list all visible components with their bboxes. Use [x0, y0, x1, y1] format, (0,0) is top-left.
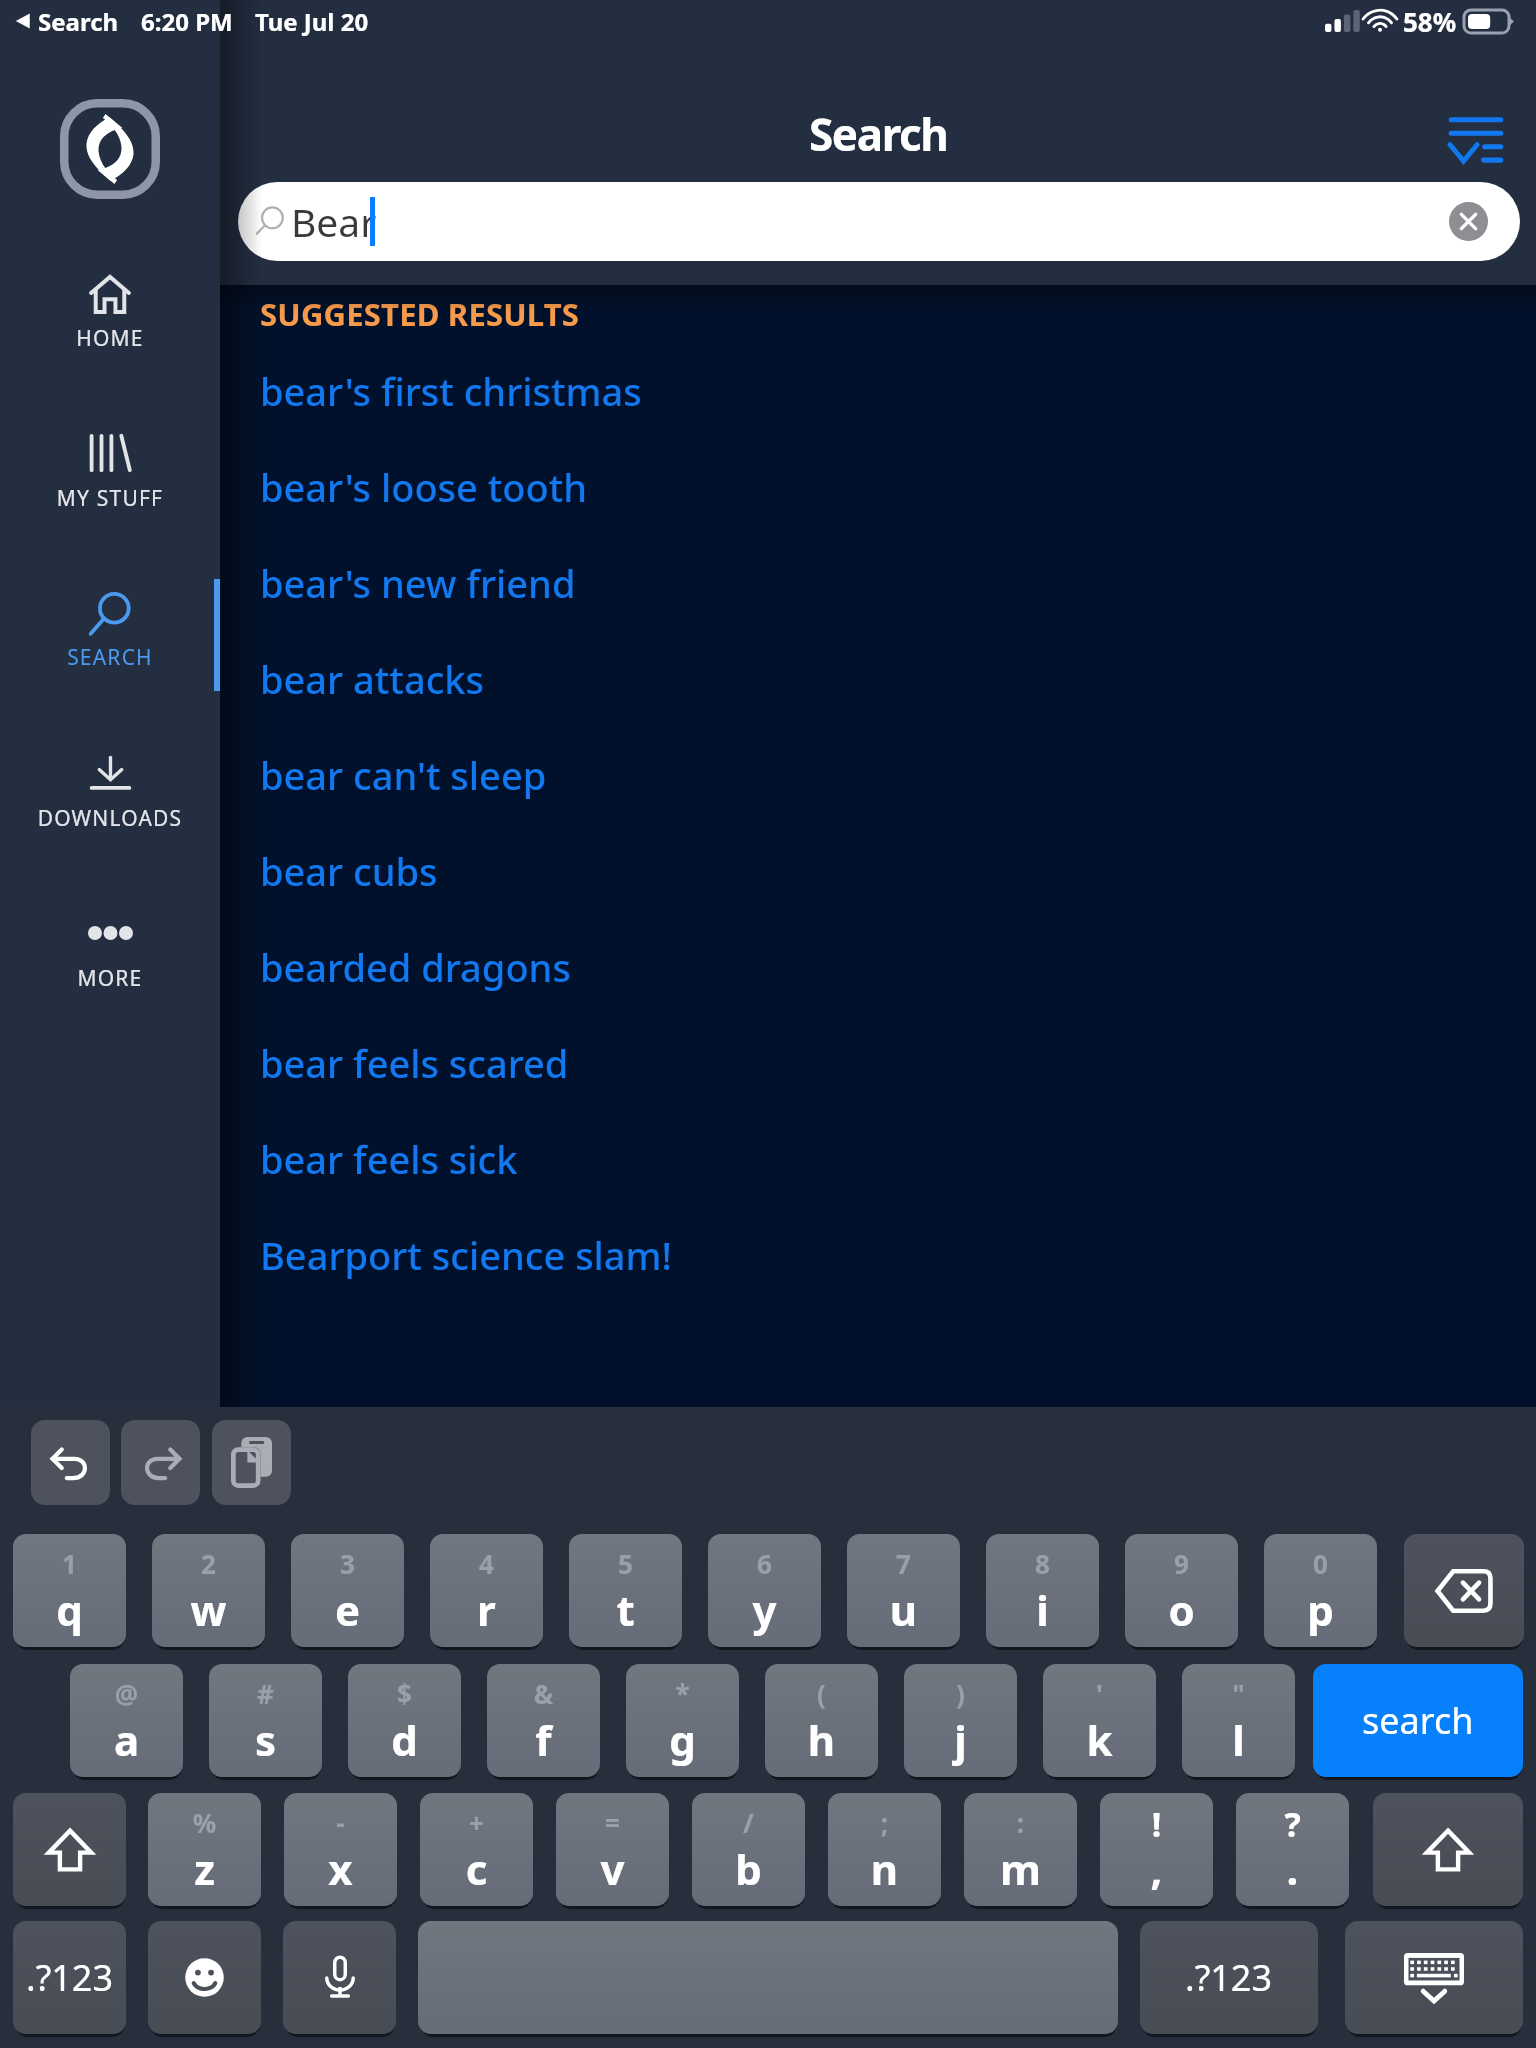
- button[interactable]: (: [765, 1664, 878, 1777]
- staticText: ,: [1100, 1840, 1213, 1897]
- staticText: 6:20 PM: [141, 5, 233, 38]
- button[interactable]: 5: [569, 1534, 682, 1647]
- button[interactable]: bear's first christmas: [220, 357, 1536, 425]
- button[interactable]: [148, 1921, 261, 2034]
- button[interactable]: &: [487, 1664, 600, 1777]
- button[interactable]: ): [904, 1664, 1017, 1777]
- button[interactable]: Undo: [31, 1420, 110, 1505]
- button[interactable]: .?123: [13, 1921, 126, 2034]
- staticText: Bear: [291, 195, 377, 248]
- staticText: bear feels sick: [260, 1133, 518, 1185]
- staticText: DOWNLOADS: [0, 804, 220, 833]
- button[interactable]: ?: [1236, 1793, 1349, 1906]
- staticText: e: [291, 1581, 404, 1638]
- button[interactable]: MY STUFF: [0, 407, 220, 499]
- button[interactable]: %: [148, 1793, 261, 1906]
- button[interactable]: HOME: [0, 248, 220, 340]
- button[interactable]: 9: [1125, 1534, 1238, 1647]
- staticText: &: [487, 1676, 600, 1711]
- staticText: s: [209, 1711, 322, 1768]
- button[interactable]: -: [284, 1793, 397, 1906]
- staticText: .?123: [1185, 1953, 1273, 2002]
- button[interactable]: MORE: [0, 887, 220, 979]
- button[interactable]: [1373, 1793, 1523, 1906]
- button[interactable]: 6: [708, 1534, 821, 1647]
- button[interactable]: Redo: [121, 1420, 200, 1505]
- button[interactable]: [418, 1921, 1118, 2034]
- button[interactable]: 0: [1264, 1534, 1377, 1647]
- button[interactable]: Bear: [238, 182, 1520, 261]
- button[interactable]: 7: [847, 1534, 960, 1647]
- button[interactable]: $: [348, 1664, 461, 1777]
- staticText: .: [1236, 1840, 1349, 1897]
- staticText: i: [986, 1581, 1099, 1638]
- button[interactable]: Sort: [1442, 105, 1510, 173]
- staticText: d: [348, 1711, 461, 1768]
- button[interactable]: 4: [430, 1534, 543, 1647]
- staticText: ): [904, 1676, 1017, 1711]
- button[interactable]: [1345, 1921, 1523, 2034]
- staticText: .?123: [26, 1953, 114, 2002]
- staticText: o: [1125, 1581, 1238, 1638]
- staticText: a: [70, 1711, 183, 1768]
- button[interactable]: *: [626, 1664, 739, 1777]
- button[interactable]: .?123: [1140, 1921, 1318, 2034]
- staticText: Search: [38, 5, 119, 38]
- staticText: bear cubs: [260, 845, 438, 897]
- button[interactable]: ': [1043, 1664, 1156, 1777]
- button[interactable]: Paste: [212, 1420, 291, 1505]
- staticText: b: [692, 1840, 805, 1897]
- button[interactable]: ;: [828, 1793, 941, 1906]
- staticText: ': [1043, 1676, 1156, 1711]
- button[interactable]: [13, 1793, 126, 1906]
- button[interactable]: bear attacks: [220, 645, 1536, 713]
- staticText: 1: [13, 1546, 126, 1581]
- button[interactable]: 3: [291, 1534, 404, 1647]
- button[interactable]: bear's loose tooth: [220, 453, 1536, 521]
- staticText: Tue Jul 20: [255, 5, 369, 38]
- button[interactable]: bear can't sleep: [220, 741, 1536, 809]
- button[interactable]: 1: [13, 1534, 126, 1647]
- staticText: bear's first christmas: [260, 365, 642, 417]
- staticText: c: [420, 1840, 533, 1897]
- button[interactable]: bear's new friend: [220, 549, 1536, 617]
- staticText: Bearport science slam!: [260, 1229, 672, 1281]
- button[interactable]: /: [692, 1793, 805, 1906]
- staticText: 8: [986, 1546, 1099, 1581]
- staticText: ;: [828, 1805, 941, 1840]
- button[interactable]: Bearport science slam!: [220, 1221, 1536, 1289]
- staticText: n: [828, 1840, 941, 1897]
- button[interactable]: +: [420, 1793, 533, 1906]
- staticText: SUGGESTED RESULTS: [260, 293, 580, 335]
- button[interactable]: Clear search: [1449, 202, 1488, 241]
- staticText: #: [209, 1676, 322, 1711]
- button[interactable]: SEARCH: [0, 568, 220, 660]
- staticText: !: [1100, 1801, 1213, 1847]
- staticText: =: [556, 1805, 669, 1840]
- button[interactable]: search: [1313, 1664, 1523, 1777]
- button[interactable]: bearded dragons: [220, 933, 1536, 1001]
- staticText: 5: [569, 1546, 682, 1581]
- button[interactable]: [1404, 1534, 1524, 1647]
- staticText: bear can't sleep: [260, 749, 547, 801]
- staticText: k: [1043, 1711, 1156, 1768]
- button[interactable]: :: [964, 1793, 1077, 1906]
- staticText: 2: [152, 1546, 265, 1581]
- staticText: g: [626, 1711, 739, 1768]
- staticText: -: [284, 1805, 397, 1840]
- button[interactable]: =: [556, 1793, 669, 1906]
- staticText: MY STUFF: [0, 484, 220, 513]
- staticText: $: [348, 1676, 461, 1711]
- button[interactable]: @: [70, 1664, 183, 1777]
- button[interactable]: bear feels sick: [220, 1125, 1536, 1193]
- button[interactable]: bear feels scared: [220, 1029, 1536, 1097]
- button[interactable]: #: [209, 1664, 322, 1777]
- button[interactable]: [283, 1921, 396, 2034]
- button[interactable]: DOWNLOADS: [0, 727, 220, 819]
- button[interactable]: 2: [152, 1534, 265, 1647]
- staticText: bear's loose tooth: [260, 461, 588, 513]
- button[interactable]: bear cubs: [220, 837, 1536, 905]
- button[interactable]: 8: [986, 1534, 1099, 1647]
- button[interactable]: ": [1182, 1664, 1295, 1777]
- button[interactable]: !: [1100, 1793, 1213, 1906]
